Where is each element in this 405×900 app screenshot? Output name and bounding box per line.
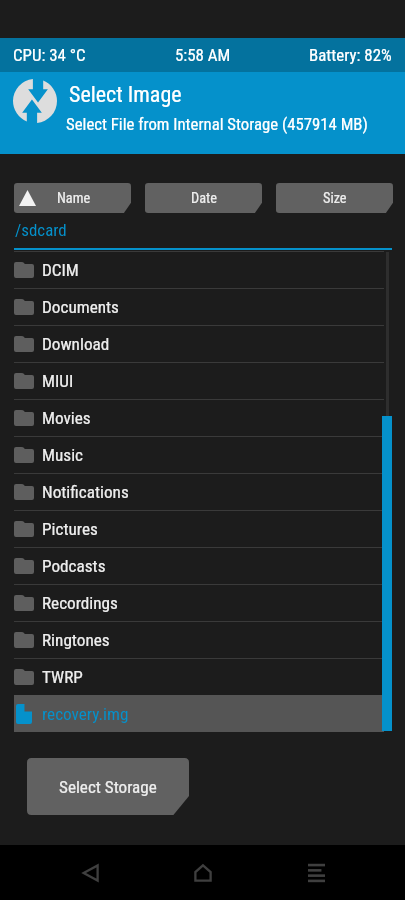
staticText: Movies [42, 408, 91, 428]
staticText: 5:58 AM [175, 45, 231, 65]
button[interactable]: Ringtones [14, 621, 384, 658]
staticText: TWRP [42, 667, 83, 687]
button[interactable]: Music [14, 436, 384, 473]
button[interactable]: Recordings [14, 584, 384, 621]
staticText: Pictures [42, 519, 98, 539]
staticText: Music [42, 445, 84, 465]
button[interactable]: Size [276, 183, 393, 213]
button[interactable]: Date [145, 183, 262, 213]
staticText: Name [57, 190, 91, 207]
button[interactable]: TWRP [14, 658, 384, 695]
button[interactable]: Movies [14, 399, 384, 436]
staticText: DCIM [42, 260, 79, 280]
button[interactable]: MIUI [14, 362, 384, 399]
button[interactable]: Back [62, 845, 118, 900]
button[interactable]: recovery.img [14, 695, 384, 732]
staticText: Select File from Internal Storage (45791… [66, 114, 368, 134]
staticText: Size [323, 190, 347, 207]
button[interactable]: Home [175, 845, 231, 900]
staticText: Ringtones [42, 630, 110, 650]
staticText: Select Storage [59, 777, 157, 797]
staticText: Date [191, 190, 217, 207]
staticText: MIUI [42, 371, 74, 391]
button[interactable]: Pictures [14, 510, 384, 547]
staticText: Battery: 82% [309, 45, 392, 65]
staticText: Podcasts [42, 556, 106, 576]
staticText: /sdcard [15, 220, 67, 240]
staticText: recovery.img [42, 704, 129, 724]
button[interactable]: DCIM [14, 251, 384, 288]
button[interactable]: Documents [14, 288, 384, 325]
staticText: Documents [42, 297, 119, 317]
button[interactable]: Download [14, 325, 384, 362]
button[interactable]: Select Storage [27, 758, 189, 815]
button[interactable]: Name [14, 183, 131, 213]
staticText: CPU: 34 °C [13, 45, 86, 65]
staticText: Recordings [42, 593, 118, 613]
staticText: Download [42, 334, 110, 354]
button[interactable]: Menu [288, 845, 344, 900]
staticText: Notifications [42, 482, 129, 502]
button[interactable]: Podcasts [14, 547, 384, 584]
button[interactable]: Notifications [14, 473, 384, 510]
staticText: Select Image [69, 82, 182, 108]
